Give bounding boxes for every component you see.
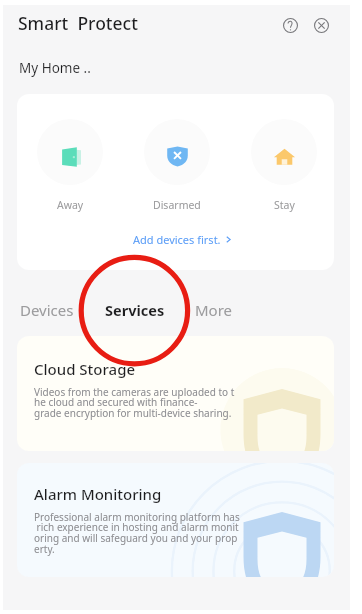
staticText: Away bbox=[57, 198, 84, 212]
staticText: Professional alarm monitoring platform h… bbox=[34, 510, 240, 556]
button[interactable]: Alarm Monitoring bbox=[17, 463, 334, 577]
button[interactable]: Add devices first. bbox=[133, 232, 232, 247]
staticText: Alarm Monitoring bbox=[34, 484, 162, 504]
button[interactable]: More bbox=[195, 300, 233, 320]
button[interactable]: Disarmed bbox=[144, 119, 210, 212]
button[interactable]: Stay bbox=[251, 119, 317, 212]
button[interactable]: Cloud Storage bbox=[17, 336, 334, 451]
staticText: Stay bbox=[274, 198, 295, 212]
staticText: My Home .. bbox=[19, 59, 91, 77]
staticText: Add devices first. bbox=[133, 232, 221, 247]
button[interactable]: Help bbox=[275, 10, 306, 41]
staticText: Disarmed bbox=[153, 198, 201, 212]
button[interactable]: Close bbox=[306, 10, 337, 41]
staticText: Videos from the cameras are uploaded to … bbox=[34, 385, 235, 420]
staticText: Cloud Storage bbox=[34, 359, 136, 379]
button[interactable]: Away bbox=[37, 119, 103, 212]
staticText: Smart Protect bbox=[18, 11, 138, 35]
button[interactable]: Services bbox=[105, 300, 165, 320]
button[interactable]: Devices bbox=[20, 300, 74, 320]
